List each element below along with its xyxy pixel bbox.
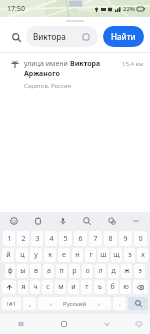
- staticText: 7: [93, 234, 98, 244]
- staticText: у: [34, 250, 38, 260]
- button[interactable]: Recent apps: [0, 314, 42, 334]
- button[interactable]: л: [95, 264, 106, 278]
- staticText: 6: [78, 234, 83, 244]
- button[interactable]: ф: [5, 264, 15, 278]
- button[interactable]: 5: [59, 231, 72, 246]
- button[interactable]: н: [72, 248, 83, 262]
- button[interactable]: х: [137, 248, 148, 262]
- staticText: л: [98, 266, 103, 276]
- staticText: ч: [33, 282, 38, 292]
- staticText: г: [89, 250, 93, 260]
- staticText: о: [85, 266, 90, 276]
- staticText: Аржаного: [24, 69, 60, 79]
- staticText: й: [6, 250, 11, 260]
- button[interactable]: 4: [45, 231, 57, 246]
- staticText: ф: [7, 266, 13, 276]
- button[interactable]: ,: [23, 297, 36, 310]
- button[interactable]: я: [18, 280, 28, 294]
- button[interactable]: ы: [17, 264, 28, 278]
- button[interactable]: ч: [30, 280, 40, 294]
- staticText: ›: [98, 300, 100, 308]
- button[interactable]: Back: [85, 314, 128, 334]
- button[interactable]: More options: [130, 215, 142, 227]
- staticText: 0: [138, 234, 143, 244]
- button[interactable]: б: [107, 280, 118, 294]
- button[interactable]: Clipboard: [32, 215, 44, 227]
- button[interactable]: 0: [134, 231, 147, 246]
- staticText: р: [72, 266, 77, 276]
- staticText: м: [58, 282, 64, 292]
- button[interactable]: у: [30, 248, 42, 262]
- button[interactable]: с: [42, 280, 53, 294]
- button[interactable]: Shift: [2, 280, 16, 294]
- button[interactable]: Виктора Аржаного: [26, 26, 98, 47]
- staticText: !#1: [7, 300, 16, 308]
- button[interactable]: 9: [119, 231, 132, 246]
- button[interactable]: Hide keyboard: [128, 314, 150, 334]
- button[interactable]: Voice input: [57, 215, 69, 227]
- button[interactable]: ю: [120, 280, 131, 294]
- button[interactable]: щ: [111, 248, 122, 262]
- staticText: ж: [124, 266, 130, 276]
- button[interactable]: ‹: [38, 297, 111, 310]
- staticText: к: [48, 250, 52, 260]
- button[interactable]: г: [85, 248, 96, 262]
- button[interactable]: 6: [74, 231, 87, 246]
- button[interactable]: э: [134, 264, 145, 278]
- staticText: ы: [20, 266, 26, 276]
- staticText: 15,4 км: [122, 60, 144, 68]
- button[interactable]: !#1: [2, 297, 21, 310]
- button[interactable]: Emoji: [8, 215, 20, 227]
- button[interactable]: з: [124, 248, 135, 262]
- button[interactable]: й: [2, 248, 14, 262]
- button[interactable]: т: [81, 280, 92, 294]
- button[interactable]: Search: [81, 215, 93, 227]
- staticText: я: [21, 282, 26, 292]
- button[interactable]: и: [68, 280, 79, 294]
- button[interactable]: Voice search: [81, 32, 91, 42]
- button[interactable]: .: [113, 297, 126, 310]
- button[interactable]: 7: [89, 231, 102, 246]
- staticText: т: [85, 282, 89, 292]
- button[interactable]: ь: [94, 280, 105, 294]
- button[interactable]: к: [44, 248, 56, 262]
- staticText: 1: [7, 234, 12, 244]
- button[interactable]: д: [108, 264, 119, 278]
- staticText: ц: [20, 250, 25, 260]
- staticText: 17:50: [7, 4, 25, 14]
- staticText: .: [119, 299, 121, 309]
- button[interactable]: 3: [31, 231, 43, 246]
- staticText: е: [62, 250, 66, 260]
- button[interactable]: Найти: [103, 26, 144, 47]
- button[interactable]: о: [82, 264, 93, 278]
- button[interactable]: 1: [3, 231, 15, 246]
- staticText: Саратов, Россия: [24, 82, 72, 90]
- staticText: ю: [123, 282, 129, 292]
- button[interactable]: ш: [98, 248, 109, 262]
- staticText: улица имени: [24, 59, 70, 69]
- staticText: с: [46, 282, 50, 292]
- button[interactable]: м: [55, 280, 66, 294]
- button[interactable]: а: [43, 264, 54, 278]
- button[interactable]: Translate: [106, 215, 118, 227]
- button[interactable]: улица имени: [0, 53, 150, 96]
- staticText: ,: [29, 299, 31, 309]
- button[interactable]: п: [56, 264, 67, 278]
- button[interactable]: в: [30, 264, 41, 278]
- staticText: д: [111, 266, 116, 276]
- button[interactable]: ц: [16, 248, 28, 262]
- staticText: 9: [123, 234, 128, 244]
- staticText: н: [75, 250, 80, 260]
- button[interactable]: е: [58, 248, 70, 262]
- button[interactable]: Backspace: [133, 280, 148, 294]
- button[interactable]: р: [69, 264, 80, 278]
- button[interactable]: 8: [104, 231, 117, 246]
- staticText: 8: [108, 234, 113, 244]
- button[interactable]: Home: [42, 314, 85, 334]
- staticText: в: [34, 266, 38, 276]
- button[interactable]: Search: [6, 27, 26, 47]
- button[interactable]: Search: [128, 297, 148, 310]
- staticText: Русский: [63, 300, 86, 308]
- button[interactable]: 2: [17, 231, 29, 246]
- button[interactable]: ж: [121, 264, 132, 278]
